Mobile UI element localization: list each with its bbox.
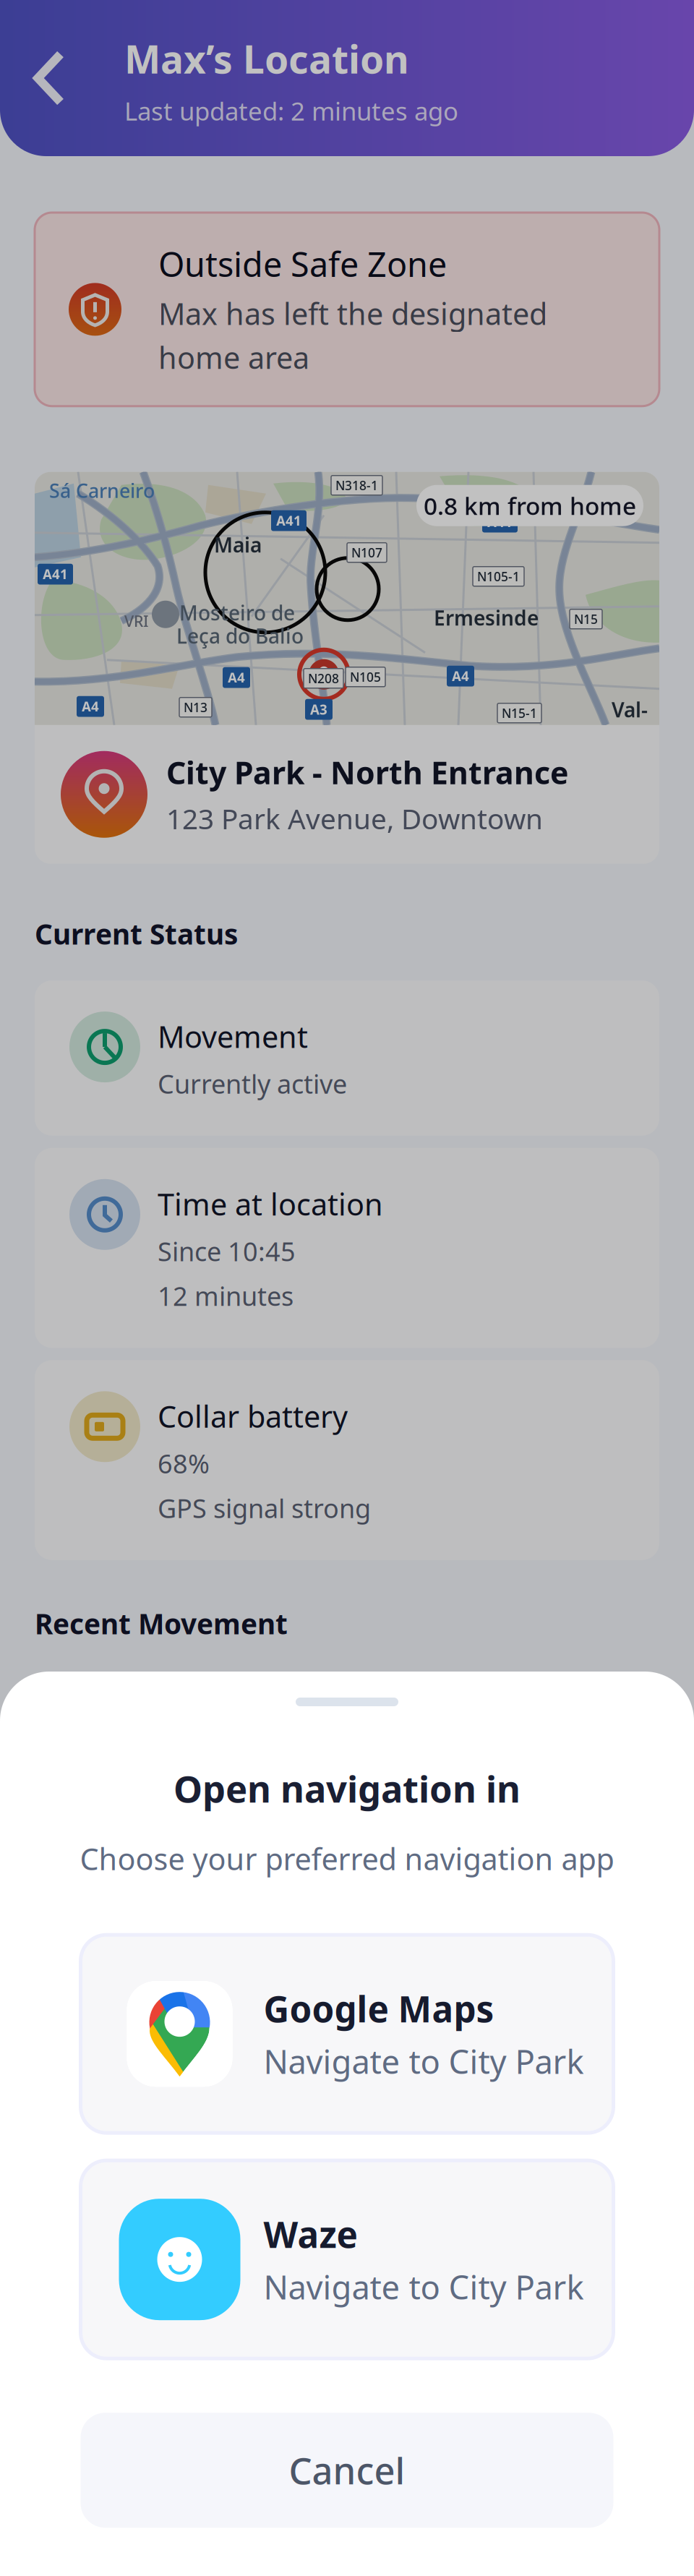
- staticText: VRI: [124, 611, 149, 631]
- staticText: 0.8 km from home: [424, 490, 636, 522]
- staticText: Current Status: [35, 915, 238, 952]
- staticText: 12 minutes: [158, 1279, 294, 1313]
- staticText: Cancel: [289, 2446, 405, 2495]
- staticText: Max’s Location: [124, 33, 409, 84]
- staticText: Navigate to City Park: [264, 2039, 584, 2083]
- staticText: Last updated: 2 minutes ago: [124, 94, 458, 128]
- staticText: Currently active: [158, 1066, 347, 1101]
- staticText: 123 Park Avenue, Downtown: [166, 800, 543, 837]
- staticText: N107: [351, 544, 382, 561]
- staticText: A3: [310, 700, 327, 718]
- staticText: Navigate to City Park: [264, 2265, 584, 2308]
- staticText: Time at location: [158, 1184, 383, 1224]
- staticText: Mosteiro de: [179, 599, 295, 626]
- staticText: A4: [228, 669, 245, 686]
- staticText: N105-1: [477, 568, 520, 585]
- button[interactable]: Google Maps: [81, 1935, 613, 2133]
- staticText: N15: [574, 611, 598, 627]
- staticText: A41: [43, 565, 68, 583]
- staticText: Maia: [214, 531, 262, 558]
- staticText: Open navigation in: [173, 1764, 520, 1813]
- staticText: Sá Carneiro: [49, 478, 155, 503]
- staticText: Valong: [612, 696, 650, 750]
- button[interactable]: Waze: [81, 2160, 613, 2359]
- staticText: 68%: [158, 1446, 210, 1481]
- staticText: A41: [276, 512, 301, 530]
- staticText: Choose your preferred navigation app: [80, 1839, 614, 1878]
- staticText: N318-1: [335, 477, 378, 494]
- staticText: GPS signal strong: [158, 1491, 371, 1525]
- staticText: Recent Movement: [35, 1605, 288, 1642]
- staticText: Movement: [158, 1017, 308, 1056]
- button[interactable]: Back: [0, 6, 101, 150]
- staticText: Since 10:45: [158, 1234, 296, 1268]
- staticText: Outside Safe Zone: [158, 241, 447, 286]
- staticText: N13: [184, 699, 207, 716]
- button[interactable]: Cancel: [81, 2413, 613, 2528]
- staticText: home area: [158, 338, 309, 377]
- staticText: A4: [82, 697, 99, 715]
- staticText: Waze: [264, 2210, 357, 2258]
- staticText: Leça do Balio: [176, 622, 304, 649]
- staticText: Max has left the designated: [158, 294, 547, 333]
- staticText: N105: [350, 669, 381, 685]
- staticText: Collar battery: [158, 1396, 348, 1436]
- staticText: A4: [452, 667, 469, 685]
- staticText: N208: [308, 670, 339, 687]
- staticText: City Park - North Entrance: [166, 752, 568, 793]
- staticText: A41: [487, 513, 513, 531]
- staticText: Ermesinde: [434, 604, 539, 631]
- staticText: N15-1: [502, 705, 537, 721]
- staticText: Google Maps: [264, 1985, 494, 2032]
